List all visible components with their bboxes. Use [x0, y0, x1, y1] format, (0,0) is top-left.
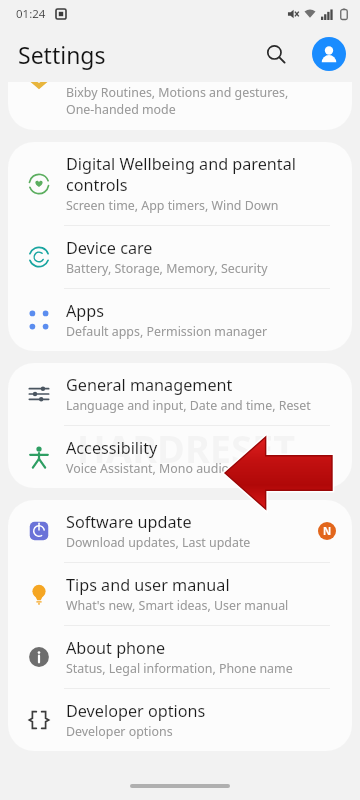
staticText: Status, Legal information, Phone name [66, 660, 293, 677]
staticText: Default apps, Permission manager [66, 323, 268, 340]
staticText: Tips and user manual [66, 574, 230, 596]
button[interactable]: Digital Wellbeing and parental controls [8, 142, 352, 225]
staticText: Settings [18, 39, 106, 70]
staticText: Bixby Routines, Motions and gestures, [66, 84, 289, 101]
button[interactable]: Account [312, 37, 346, 71]
staticText: Software update [66, 511, 192, 533]
staticText: Battery, Storage, Memory, Security [66, 260, 268, 277]
staticText: Voice Assistant, Mono audio, Assistant m… [66, 460, 326, 477]
button[interactable]: General management [8, 363, 352, 425]
button[interactable]: Bixby Routines, Motions and gestures, [8, 82, 352, 130]
staticText: Developer options [66, 700, 206, 722]
button[interactable]: Software update [8, 500, 352, 562]
button[interactable]: Accessibility [8, 426, 352, 488]
button[interactable]: Search [256, 34, 296, 74]
staticText: N [323, 524, 332, 538]
staticText: What's new, Smart ideas, User manual [66, 597, 289, 614]
staticText: Screen time, App timers, Wind Down [66, 197, 279, 214]
staticText: General management [66, 374, 233, 396]
button[interactable]: Developer options [8, 689, 352, 751]
button[interactable]: Apps [8, 289, 352, 351]
staticText: One-handed mode [66, 101, 176, 118]
staticText: Language and input, Date and time, Reset [66, 397, 311, 414]
button[interactable]: About phone [8, 626, 352, 688]
staticText: HARDRESET [12, 422, 360, 474]
staticText: Digital Wellbeing and parental controls [66, 153, 296, 196]
staticText: Developer options [66, 723, 173, 740]
staticText: Accessibility [66, 437, 158, 459]
staticText: Apps [66, 300, 105, 322]
staticText: About phone [66, 637, 166, 659]
button[interactable]: Device care [8, 226, 352, 288]
button[interactable]: Tips and user manual [8, 563, 352, 625]
staticText: Device care [66, 237, 153, 259]
staticText: 01:24 [16, 6, 46, 22]
staticText: Download updates, Last update [66, 534, 251, 551]
